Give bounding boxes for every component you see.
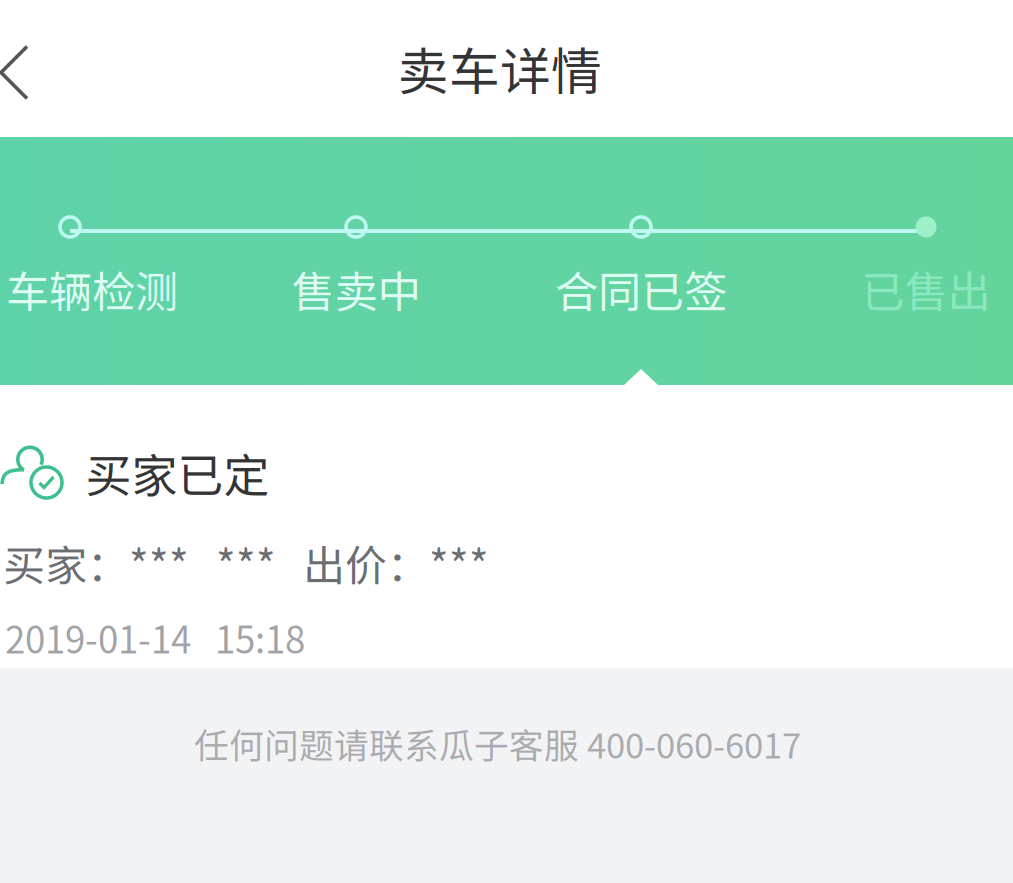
staticText: 车辆检测 bbox=[6, 258, 178, 320]
button[interactable]: 任何问题请联系瓜子客服 400-060-6017 bbox=[180, 708, 815, 779]
staticText: 任何问题请联系瓜子客服 400-060-6017 bbox=[194, 718, 801, 769]
staticText: 合同已签 bbox=[555, 258, 727, 320]
staticText: 售卖中 bbox=[291, 258, 420, 320]
button[interactable]: 返回 bbox=[0, 24, 53, 120]
staticText: 卖车详情 bbox=[398, 31, 602, 105]
staticText: 买家已定 bbox=[85, 439, 269, 506]
staticText: 2019-01-14 15:18 bbox=[5, 611, 305, 664]
staticText: 买家：*** *** 出价：*** bbox=[3, 533, 489, 593]
staticText: 已售出 bbox=[861, 258, 990, 320]
